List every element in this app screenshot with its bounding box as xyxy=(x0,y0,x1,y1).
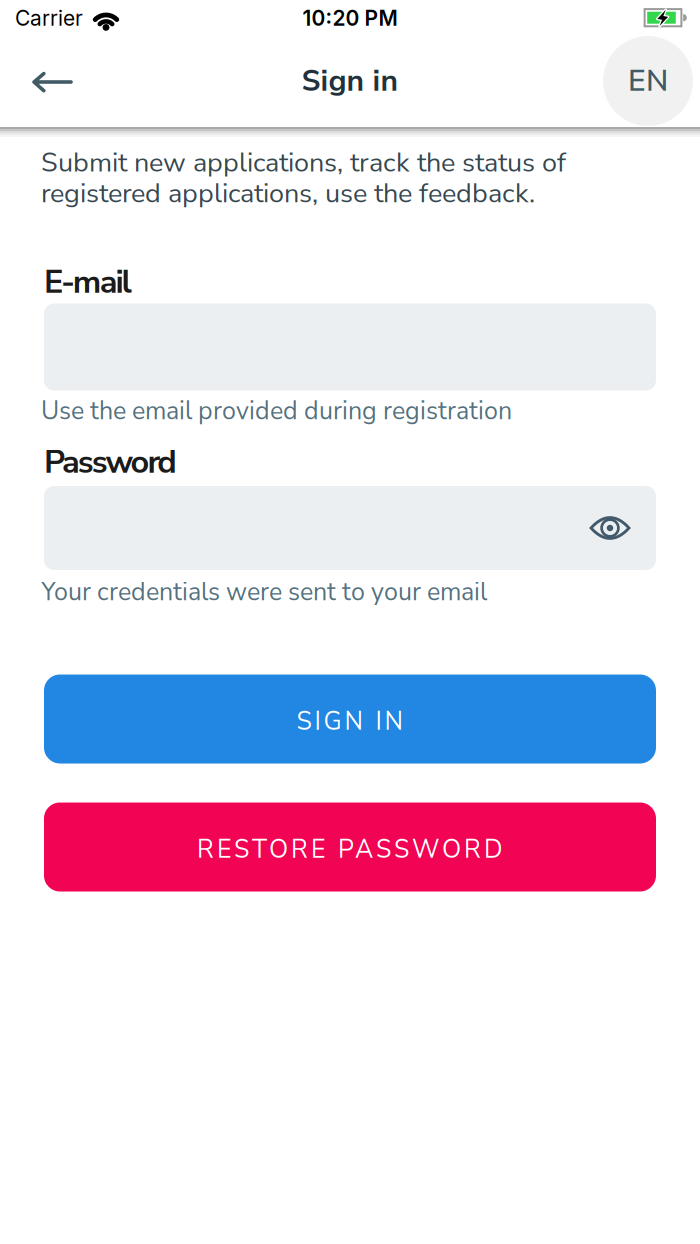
staticText: Sign in xyxy=(301,60,398,101)
staticText: Submit new applications, track the statu… xyxy=(41,147,566,208)
button[interactable]: Language: English xyxy=(603,36,693,126)
button[interactable]: Back xyxy=(30,60,74,104)
staticText: Password xyxy=(44,440,177,484)
staticText: 10:20 PM xyxy=(302,5,397,31)
staticText: Your credentials were sent to your email xyxy=(41,575,487,609)
staticText: Carrier xyxy=(15,5,83,31)
staticText: E-mail xyxy=(44,260,131,304)
staticText: SIGN IN xyxy=(296,704,403,738)
button[interactable]: SIGN IN xyxy=(44,674,656,763)
button[interactable]: Show password xyxy=(588,506,632,550)
staticText: RESTORE PASSWORD xyxy=(197,832,503,866)
staticText: EN xyxy=(628,60,668,101)
staticText: Use the email provided during registrati… xyxy=(41,394,512,428)
button[interactable]: RESTORE PASSWORD xyxy=(44,802,656,891)
